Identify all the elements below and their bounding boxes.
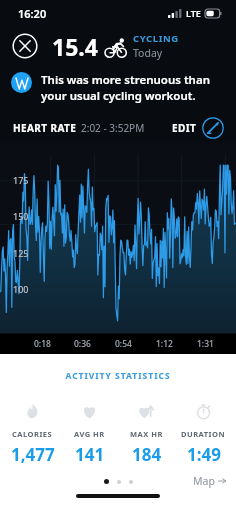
button[interactable]: Map: [193, 474, 226, 488]
staticText: 1:12: [156, 338, 173, 350]
staticText: EDIT: [172, 121, 197, 135]
staticText: 15.4: [52, 31, 98, 62]
staticText: Today: [133, 46, 163, 60]
staticText: CYCLING: [133, 32, 179, 45]
staticText: 0:36: [74, 338, 91, 350]
staticText: DURATION: [181, 429, 226, 439]
staticText: 125: [13, 247, 29, 259]
staticText: 0:18: [34, 338, 51, 350]
staticText: This was more strenuous than your usual …: [41, 72, 220, 103]
staticText: 141: [75, 443, 105, 466]
button[interactable]: DURATION: [175, 402, 232, 468]
staticText: 1:31: [197, 338, 214, 350]
button[interactable]: AVG HR: [61, 402, 118, 468]
staticText: Map: [193, 474, 215, 488]
staticText: 150: [13, 210, 29, 222]
staticText: 2:02 - 3:52PM: [81, 121, 145, 135]
staticText: 175: [13, 174, 29, 186]
staticText: CALORIES: [12, 429, 53, 439]
staticText: ACTIVITY STATISTICS: [0, 370, 236, 382]
button[interactable]: Close: [12, 33, 38, 59]
staticText: AVG HR: [74, 429, 105, 439]
staticText: 1,477: [11, 443, 55, 466]
button[interactable]: EDIT: [172, 117, 224, 139]
staticText: 0:54: [115, 338, 132, 350]
staticText: HEART RATE: [13, 121, 77, 135]
button[interactable]: MAX HR: [118, 402, 175, 468]
button[interactable]: This was more strenuous than your usual …: [0, 66, 236, 111]
staticText: 16:20: [18, 6, 47, 21]
staticText: MAX HR: [130, 429, 163, 439]
staticText: LTE: [186, 7, 201, 19]
staticText: 184: [132, 443, 162, 466]
staticText: 1:49: [187, 443, 221, 466]
button[interactable]: CALORIES: [4, 402, 61, 468]
staticText: 100: [13, 283, 29, 295]
